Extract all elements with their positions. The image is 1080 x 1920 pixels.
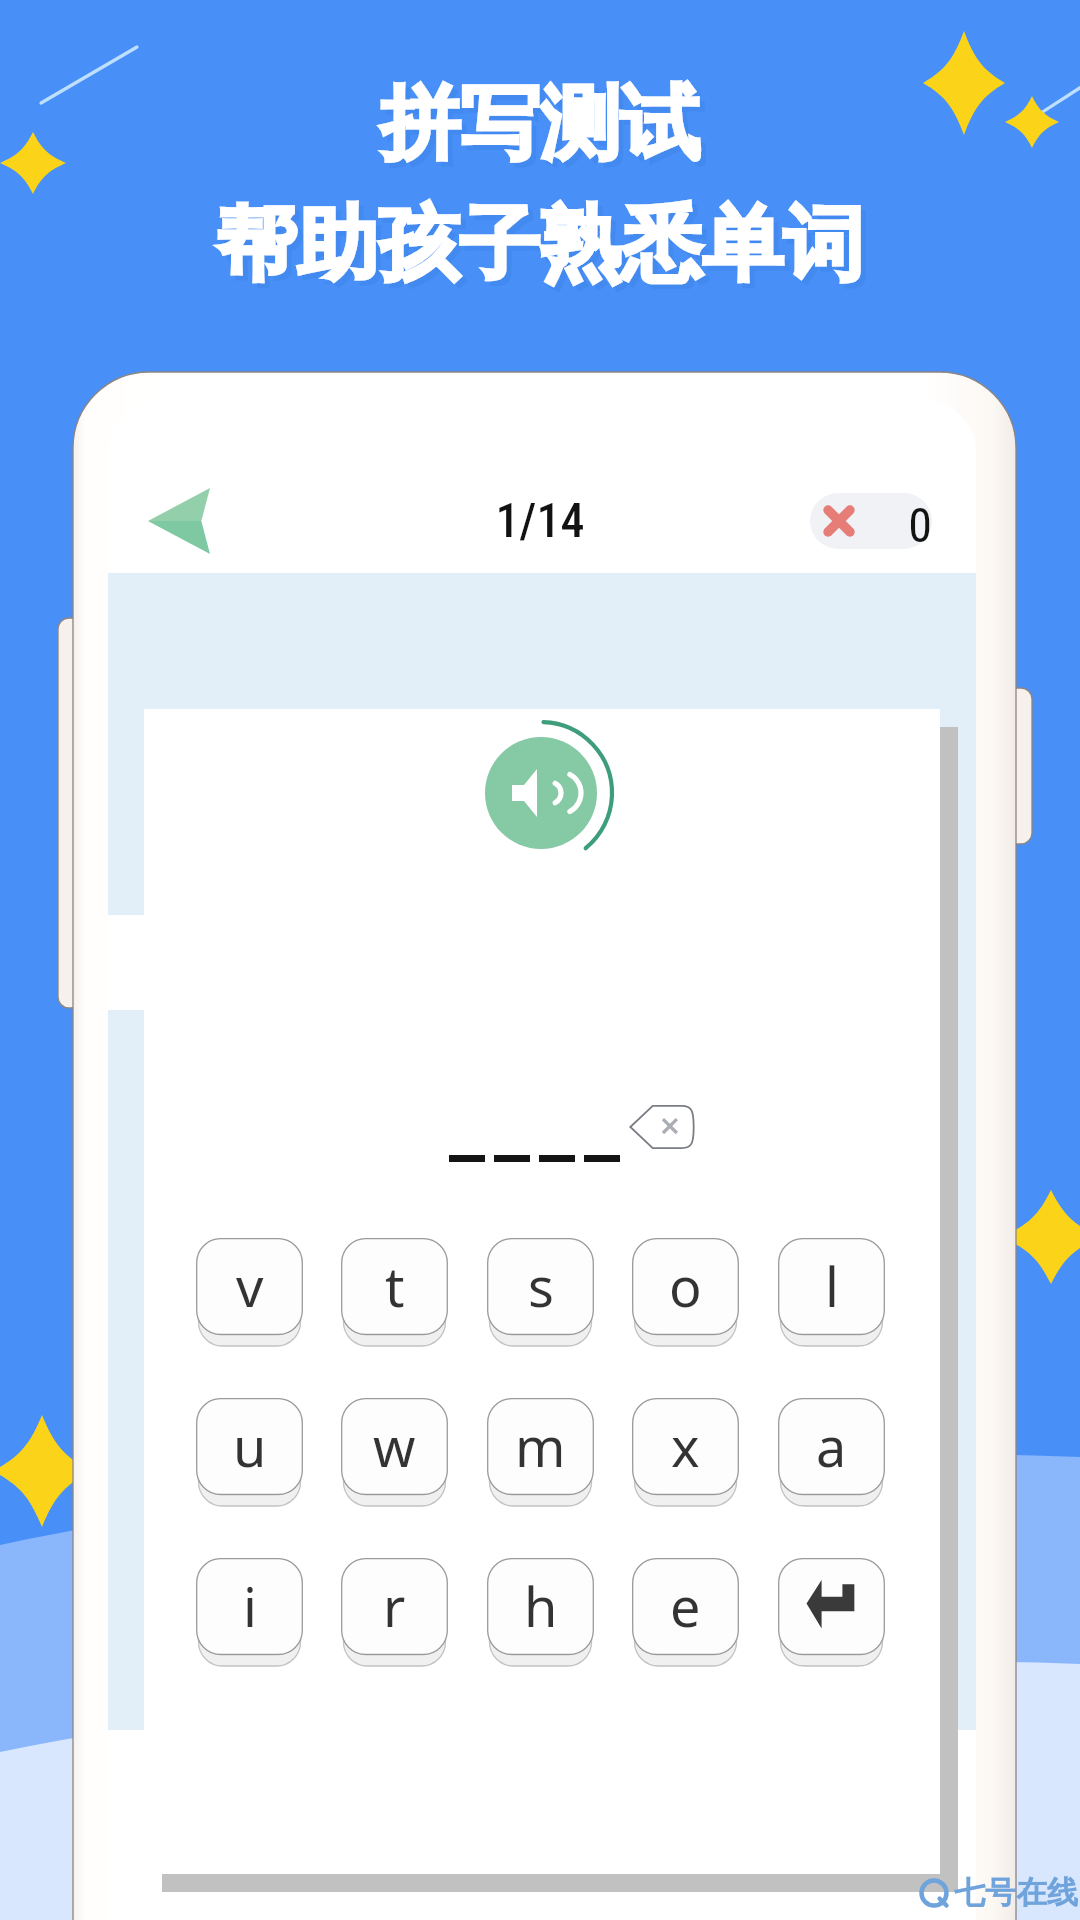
- staticText: o: [669, 1249, 702, 1323]
- staticText: r: [383, 1569, 406, 1643]
- staticText: i: [243, 1569, 257, 1643]
- staticText: 拼写测试: [0, 74, 1080, 175]
- staticText: a: [816, 1409, 847, 1483]
- button[interactable]: s: [487, 1238, 594, 1346]
- staticText: u: [233, 1409, 267, 1483]
- staticText: v: [236, 1249, 264, 1323]
- button[interactable]: o: [632, 1238, 739, 1346]
- button[interactable]: l: [778, 1238, 885, 1346]
- button[interactable]: Enter: [778, 1558, 885, 1666]
- button[interactable]: Back: [148, 488, 210, 554]
- staticText: 拼写测试: [5, 79, 1080, 180]
- staticText: t: [385, 1249, 405, 1323]
- button[interactable]: u: [196, 1398, 303, 1506]
- button[interactable]: t: [341, 1238, 448, 1346]
- staticText: h: [524, 1569, 558, 1643]
- button[interactable]: v: [196, 1238, 303, 1346]
- staticText: x: [671, 1409, 700, 1483]
- staticText: l: [825, 1249, 839, 1323]
- staticText: 1/14: [108, 492, 972, 548]
- button[interactable]: Mistakes 0: [810, 493, 932, 549]
- staticText: w: [373, 1409, 416, 1483]
- button[interactable]: i: [196, 1558, 303, 1666]
- button[interactable]: e: [632, 1558, 739, 1666]
- staticText: m: [515, 1409, 566, 1483]
- staticText: 帮助孩子熟悉单词: [5, 199, 1080, 301]
- staticText: 帮助孩子熟悉单词: [0, 194, 1080, 296]
- staticText: s: [528, 1249, 554, 1323]
- button[interactable]: Play pronunciation: [441, 693, 641, 893]
- button[interactable]: h: [487, 1558, 594, 1666]
- button[interactable]: x: [632, 1398, 739, 1506]
- button[interactable]: m: [487, 1398, 594, 1506]
- staticText: 七号在线: [954, 1873, 1078, 1912]
- button[interactable]: a: [778, 1398, 885, 1506]
- staticText: e: [670, 1569, 701, 1643]
- button[interactable]: Backspace: [629, 1103, 695, 1151]
- button[interactable]: w: [341, 1398, 448, 1506]
- staticText: 0: [890, 497, 950, 553]
- button[interactable]: r: [341, 1558, 448, 1666]
